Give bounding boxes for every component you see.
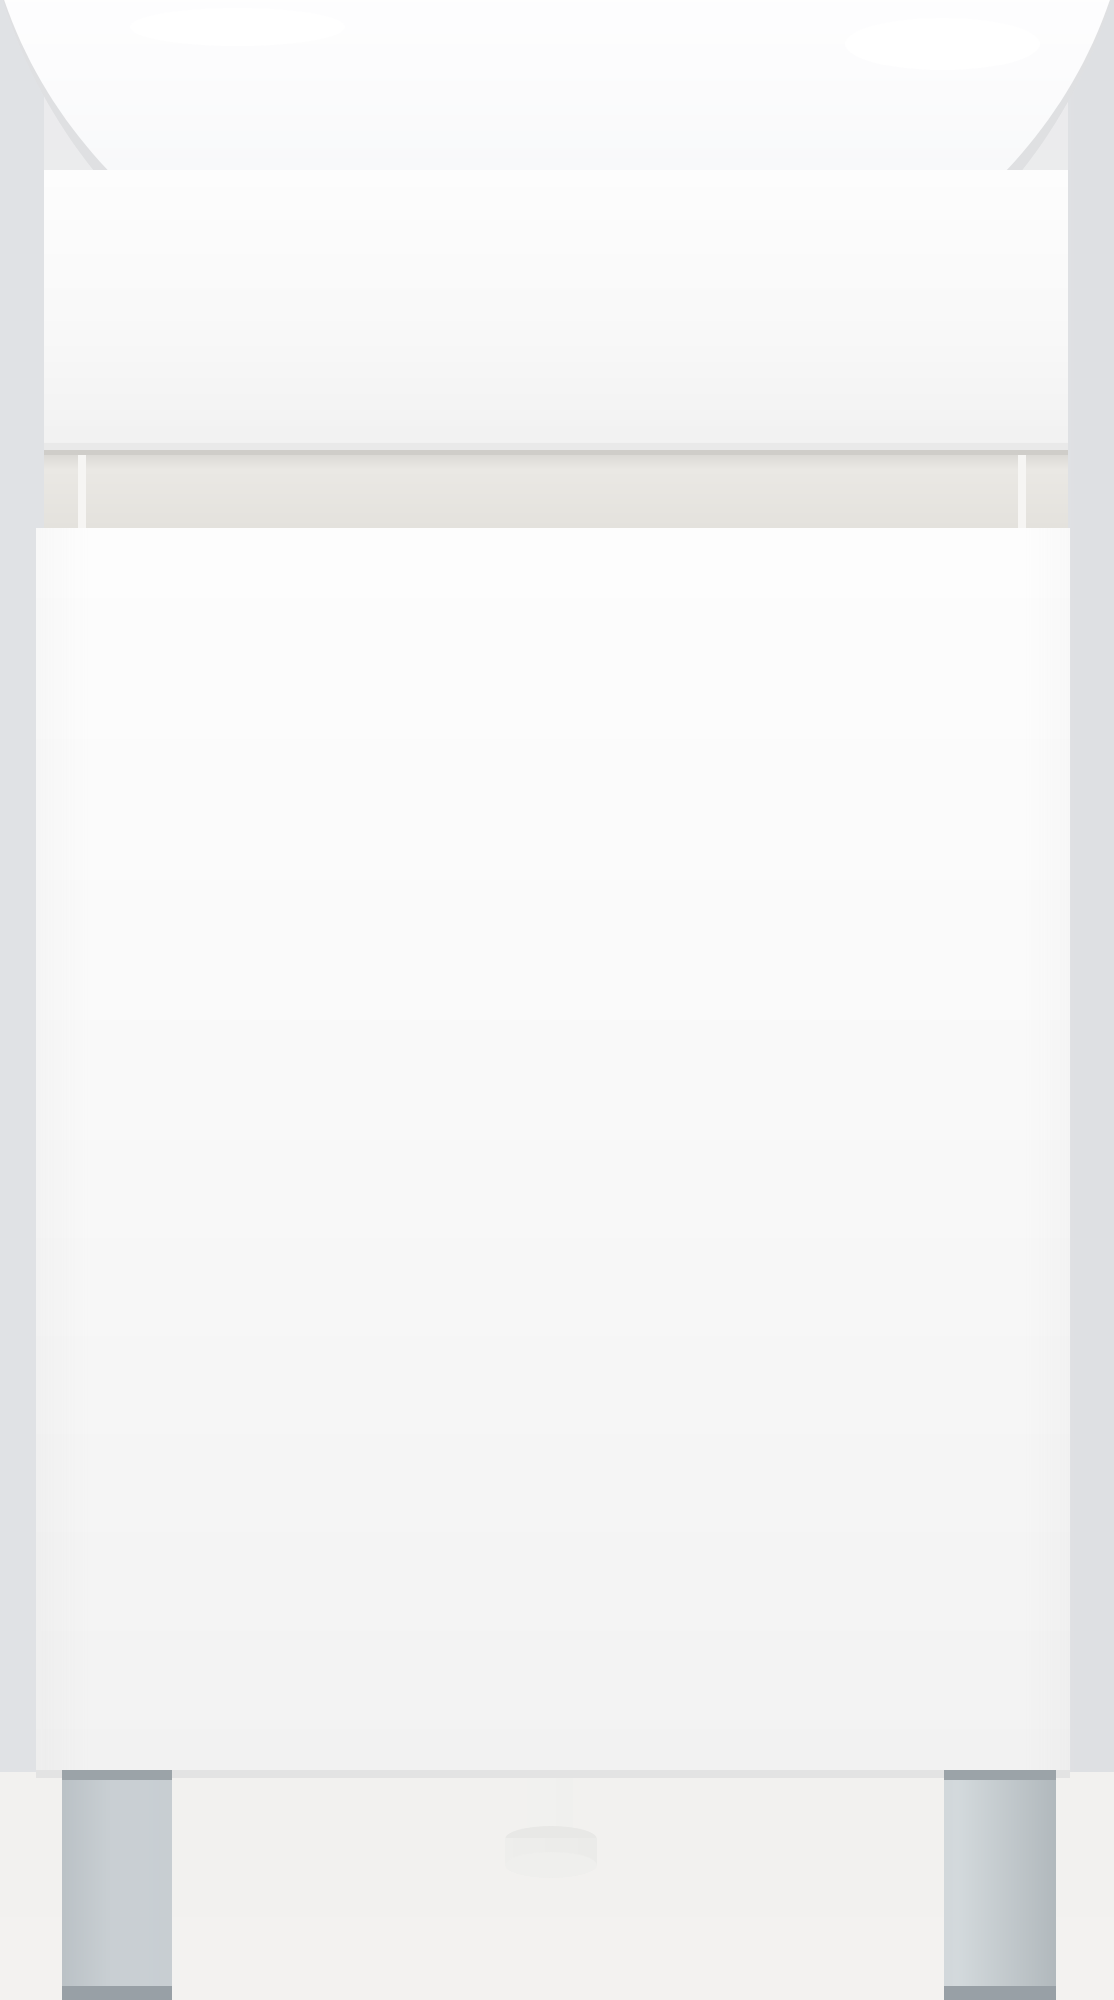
button[interactable]: White bathroom vanity unit with ceramic …: [0, 0, 1114, 2000]
